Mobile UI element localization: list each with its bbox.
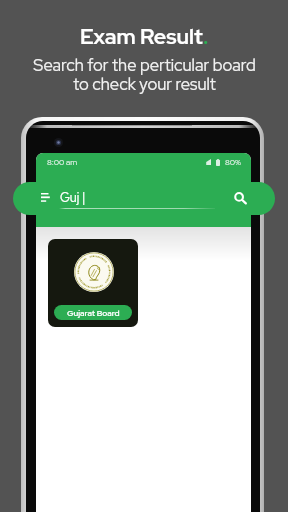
staticText: Exam Result xyxy=(80,22,203,50)
other: Search xyxy=(232,189,248,205)
staticText: 8:00 am xyxy=(47,157,78,168)
button[interactable]: Menu xyxy=(13,182,275,215)
other: Menu xyxy=(41,193,50,202)
staticText: Gujarat Board xyxy=(67,308,120,319)
button[interactable]: Gujarat Board xyxy=(54,305,132,320)
staticText: Guj | xyxy=(60,189,86,206)
staticText: . xyxy=(203,22,209,50)
staticText: 80% xyxy=(225,157,241,168)
button[interactable]: Gujarat Board xyxy=(48,239,138,327)
staticText: Search for the perticular board to check… xyxy=(33,54,256,95)
